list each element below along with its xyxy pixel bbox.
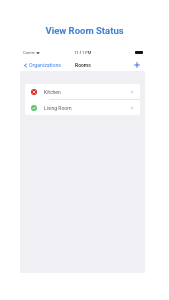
staticText: 11:11 PM <box>74 50 92 55</box>
staticText: Carrier <box>23 50 35 55</box>
staticText: Organizations <box>29 62 61 68</box>
button[interactable]: Add room <box>131 59 142 70</box>
button[interactable]: Kitchen <box>25 84 140 99</box>
staticText: Kitchen <box>44 89 61 95</box>
button[interactable]: Organizations <box>20 60 63 70</box>
button[interactable]: Living Room <box>25 100 140 115</box>
staticText: View Room Status <box>45 25 124 36</box>
staticText: Living Room <box>44 105 72 111</box>
staticText: Rooms <box>75 62 91 68</box>
